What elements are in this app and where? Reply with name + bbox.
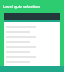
button[interactable]	[4, 34, 60, 39]
button[interactable]	[4, 24, 60, 29]
staticText: Level quiz selection	[3, 4, 41, 9]
button[interactable]	[4, 59, 60, 64]
button[interactable]	[4, 54, 60, 59]
button[interactable]	[4, 44, 60, 49]
button[interactable]	[4, 49, 60, 54]
button[interactable]	[4, 39, 60, 44]
button[interactable]	[4, 29, 60, 34]
